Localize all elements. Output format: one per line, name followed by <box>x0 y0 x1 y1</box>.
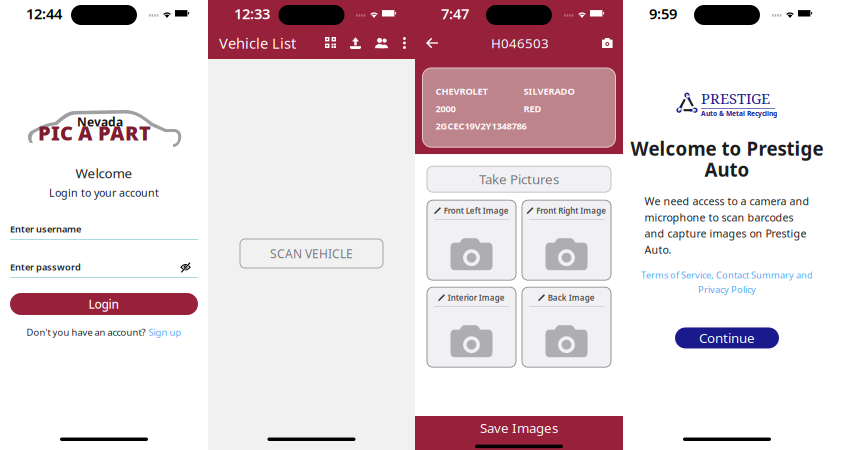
staticText: Auto. <box>644 242 671 257</box>
button[interactable]: Login <box>10 293 198 315</box>
staticText: 2GCEC19V2Y1348786 <box>435 120 526 132</box>
staticText: We need access to a camera and <box>644 194 809 208</box>
staticText: Terms of Service, Contact Summary and <box>641 269 813 281</box>
button[interactable]: SCAN VEHICLE <box>240 239 383 268</box>
staticText: Back Image <box>548 292 595 303</box>
staticText: 2000 <box>435 102 455 115</box>
staticText: Auto <box>704 157 749 182</box>
staticText: CHEVROLET <box>435 85 487 97</box>
staticText: RED <box>523 102 541 115</box>
button[interactable]: Users <box>375 37 388 49</box>
staticText: Interior Image <box>448 292 505 303</box>
button[interactable]: Sign up <box>148 326 181 338</box>
button[interactable]: Back <box>426 37 438 48</box>
button[interactable]: Front Left Image <box>427 200 516 280</box>
button[interactable]: Show password <box>180 262 191 272</box>
staticText: 12:33 <box>234 4 270 23</box>
staticText: Sign up <box>148 326 181 338</box>
button[interactable]: Front Right Image <box>522 200 611 280</box>
staticText: Don't you have an account? <box>26 326 145 338</box>
staticText: Welcome <box>75 164 132 182</box>
button[interactable]: Interior Image <box>427 287 516 367</box>
staticText: Auto & Metal Recycling <box>701 109 777 118</box>
button[interactable]: More options <box>403 37 406 49</box>
button[interactable]: Take photo <box>602 38 613 48</box>
staticText: Enter username <box>10 223 81 235</box>
staticText: 12:44 <box>26 4 62 23</box>
button[interactable]: Take Pictures <box>427 166 611 192</box>
staticText: Login <box>88 296 119 312</box>
button[interactable]: Back Image <box>522 287 611 367</box>
staticText: Front Left Image <box>444 205 509 216</box>
button[interactable]: Continue <box>675 327 779 348</box>
button[interactable]: Terms of Service, Contact Summary and <box>641 269 813 295</box>
staticText: H046503 <box>491 34 549 52</box>
staticText: Take Pictures <box>479 170 559 188</box>
staticText: and capture images on Prestige <box>644 226 806 240</box>
staticText: Enter password <box>10 261 81 273</box>
staticText: 7:47 <box>441 4 469 23</box>
button[interactable]: Save Images <box>415 416 623 450</box>
staticText: microphone to scan barcodes <box>644 210 793 224</box>
staticText: Front Right Image <box>536 205 606 216</box>
button[interactable]: Scan QR code <box>325 37 336 49</box>
staticText: Continue <box>699 329 755 347</box>
staticText: PIC A PART <box>38 119 151 146</box>
button[interactable]: Upload <box>350 37 361 49</box>
staticText: Nevada <box>77 114 123 130</box>
staticText: Login to your account <box>49 185 159 200</box>
staticText: SILVERADO <box>523 85 574 97</box>
staticText: PRESTIGE <box>701 88 770 108</box>
staticText: Privacy Policy <box>698 283 756 295</box>
staticText: Vehicle List <box>219 33 296 53</box>
staticText: SCAN VEHICLE <box>270 245 353 261</box>
staticText: Save Images <box>480 419 558 437</box>
staticText: 9:59 <box>649 4 677 23</box>
staticText: Welcome to Prestige <box>630 136 823 161</box>
